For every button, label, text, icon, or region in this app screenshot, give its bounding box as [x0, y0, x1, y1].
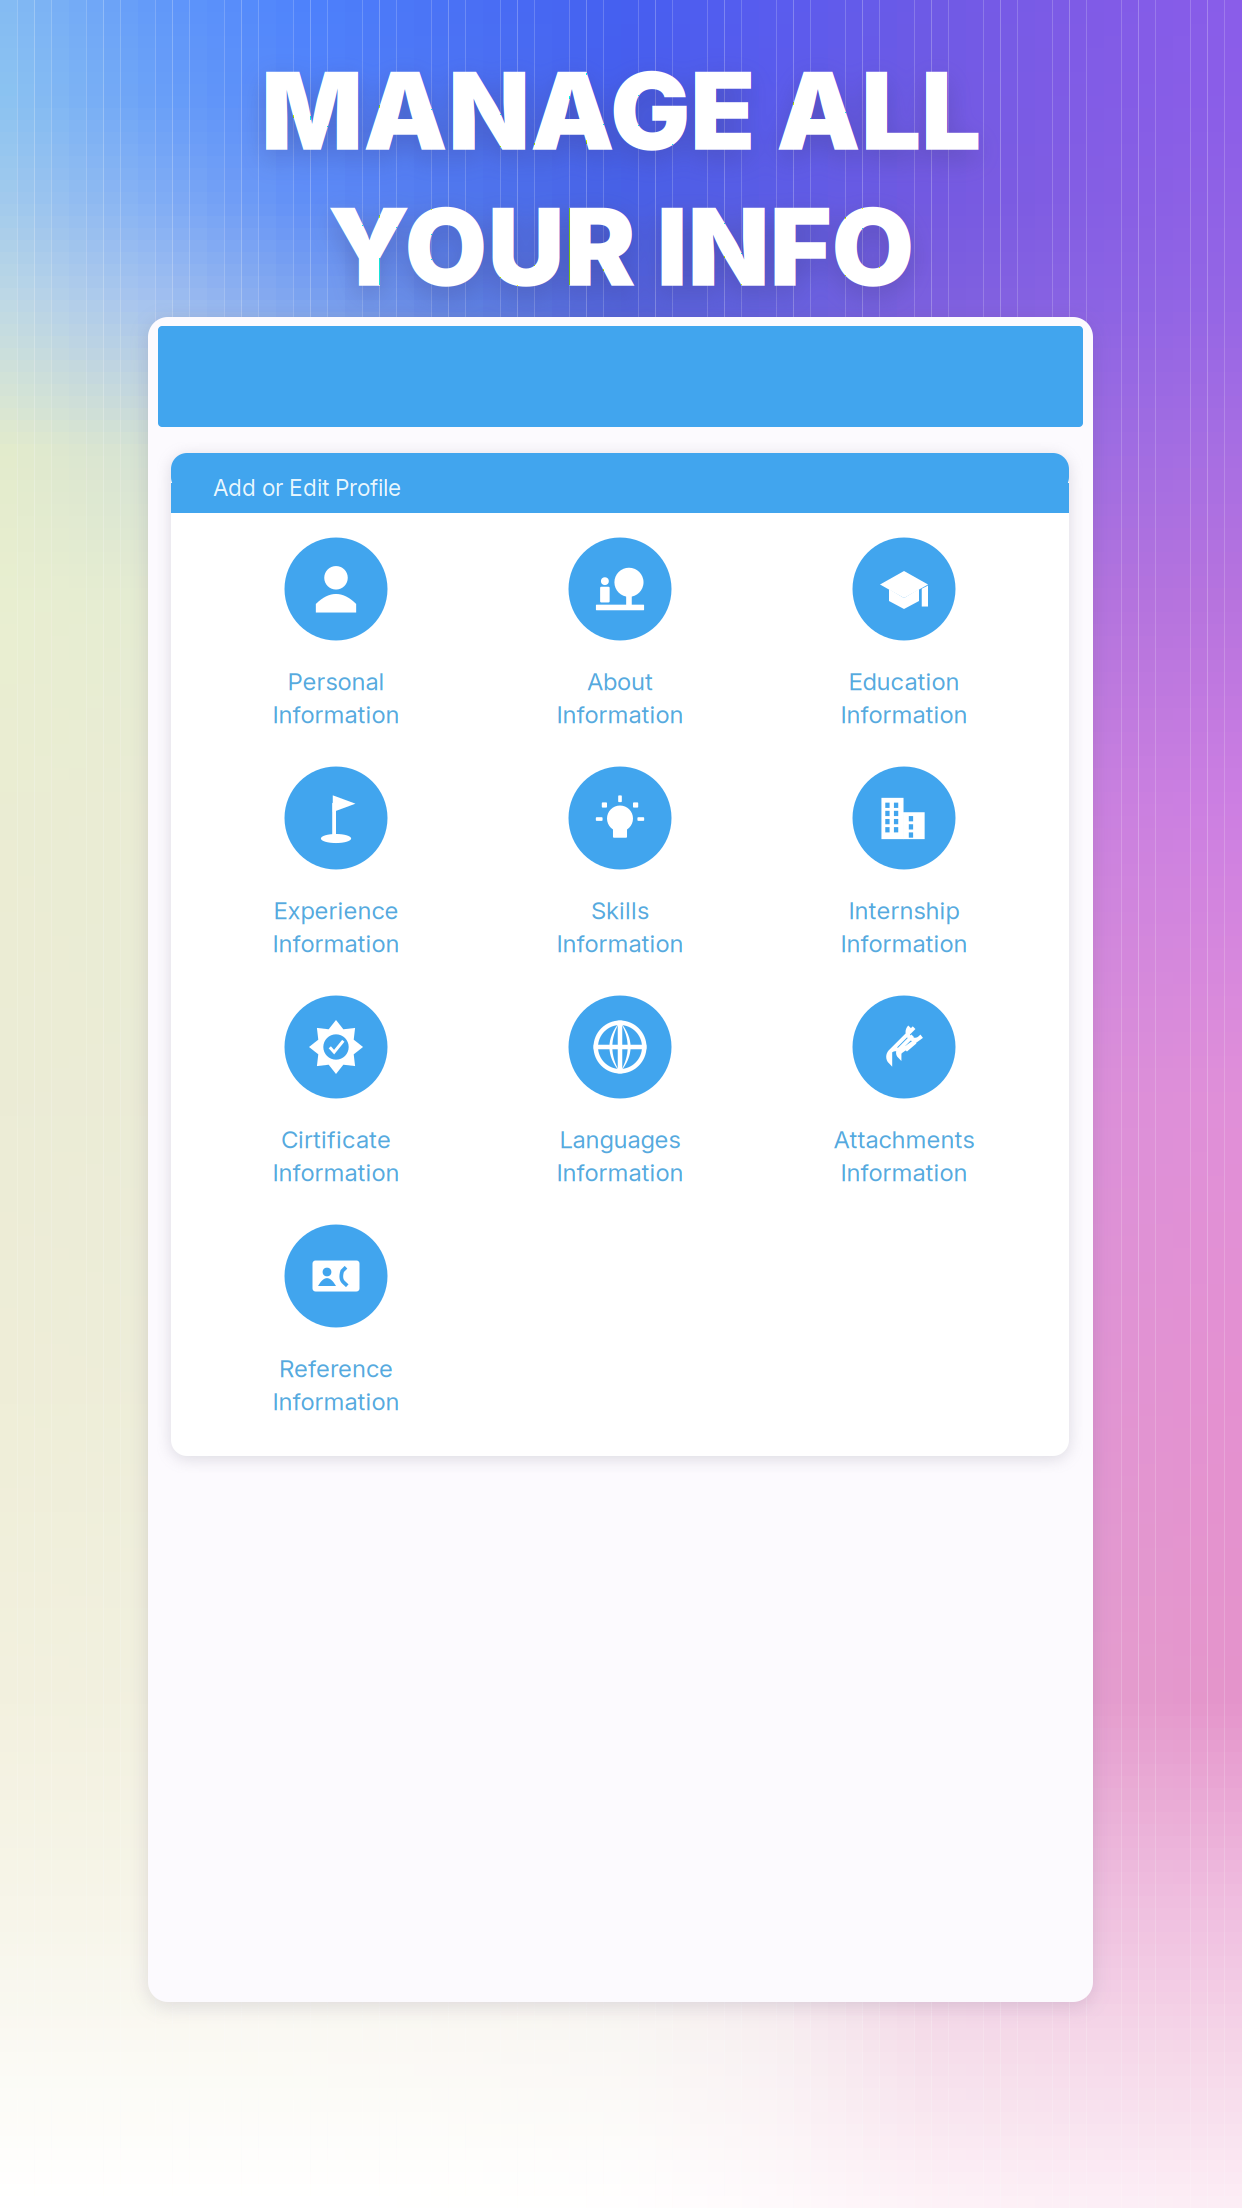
button[interactable]: Reference [211, 1224, 461, 1434]
button[interactable]: Attachments [779, 995, 1029, 1205]
staticText: Experience [273, 896, 398, 925]
button[interactable]: About [495, 537, 745, 747]
staticText: Add or Edit Profile [213, 474, 401, 501]
staticText: Information [272, 1158, 399, 1187]
button[interactable]: Personal [211, 537, 461, 747]
staticText: YOUR INFO [327, 182, 914, 312]
staticText: MANAGE ALL [261, 46, 981, 176]
staticText: Reference [279, 1354, 393, 1383]
staticText: Information [272, 929, 399, 958]
staticText: Internship [848, 896, 959, 925]
staticText: Attachments [833, 1125, 974, 1154]
button[interactable]: Cirtificate [211, 995, 461, 1205]
staticText: Information [272, 700, 399, 729]
button[interactable]: Languages [495, 995, 745, 1205]
staticText: Cirtificate [281, 1125, 391, 1154]
button[interactable]: Internship [779, 766, 1029, 976]
staticText: Information [556, 1158, 683, 1187]
button[interactable]: Skills [495, 766, 745, 976]
staticText: Skills [591, 896, 649, 925]
staticText: Information [272, 1387, 399, 1416]
staticText: About [587, 667, 653, 696]
staticText: Information [556, 929, 683, 958]
staticText: Information [840, 929, 967, 958]
staticText: Information [556, 700, 683, 729]
staticText: Personal [287, 667, 384, 696]
staticText: Languages [559, 1125, 680, 1154]
staticText: Education [848, 667, 959, 696]
staticText: Information [840, 1158, 967, 1187]
button[interactable]: Experience [211, 766, 461, 976]
staticText: Information [840, 700, 967, 729]
button[interactable]: Education [779, 537, 1029, 747]
